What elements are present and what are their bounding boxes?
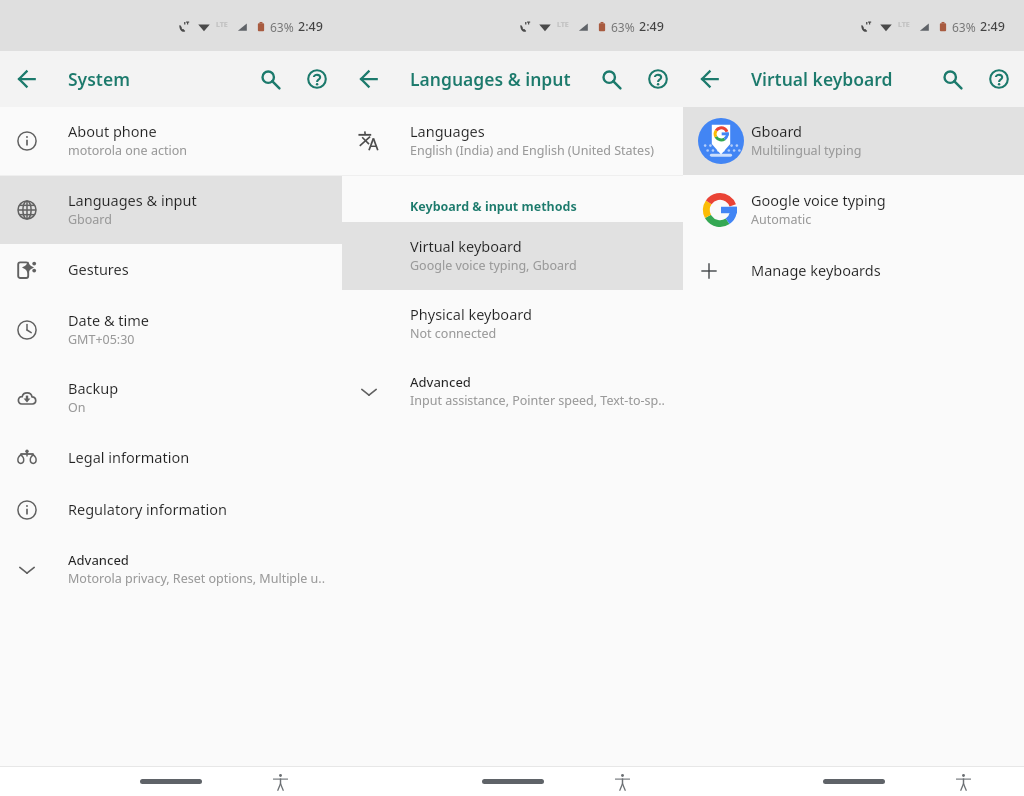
staticText: Advanced: [410, 373, 471, 391]
button[interactable]: Advanced: [0, 536, 342, 604]
button[interactable]: Home: [130, 767, 212, 796]
staticText: 63%: [270, 19, 294, 35]
button[interactable]: Home: [472, 767, 554, 796]
button[interactable]: Manage keyboards: [683, 245, 1024, 297]
staticText: Google voice typing, Gboard: [410, 257, 577, 274]
staticText: Legal information: [68, 447, 190, 467]
staticText: GMT+05:30: [68, 331, 135, 348]
staticText: LTE: [898, 20, 910, 30]
staticText: Automatic: [751, 211, 812, 228]
staticText: Motorola privacy, Reset options, Multipl…: [68, 570, 326, 587]
button[interactable]: Legal information: [0, 432, 342, 484]
staticText: Not connected: [410, 325, 497, 342]
button[interactable]: Help: [640, 61, 676, 97]
button[interactable]: Advanced: [342, 358, 683, 426]
button[interactable]: Backup: [0, 364, 342, 432]
staticText: 63%: [611, 19, 635, 35]
staticText: Regulatory information: [68, 499, 227, 519]
staticText: Languages & input: [68, 190, 197, 210]
button[interactable]: Accessibility: [949, 768, 977, 796]
button[interactable]: Accessibility: [608, 768, 636, 796]
staticText: Languages: [410, 121, 485, 141]
staticText: Input assistance, Pointer speed, Text-to…: [410, 392, 665, 409]
staticText: About phone: [68, 121, 157, 141]
staticText: 2:49: [639, 18, 664, 35]
button[interactable]: Google voice typing: [683, 175, 1024, 245]
staticText: On: [68, 399, 86, 416]
button[interactable]: Virtual keyboard: [342, 222, 683, 290]
staticText: Manage keyboards: [751, 260, 881, 280]
staticText: Virtual keyboard: [410, 236, 522, 256]
button[interactable]: Languages & input: [0, 176, 342, 244]
staticText: LTE: [216, 20, 228, 30]
staticText: Gestures: [68, 259, 129, 279]
button[interactable]: Search: [934, 61, 970, 97]
button[interactable]: Physical keyboard: [342, 290, 683, 358]
staticText: Virtual keyboard: [751, 67, 893, 91]
button[interactable]: Back: [692, 61, 728, 97]
button[interactable]: Search: [252, 61, 288, 97]
button[interactable]: About phone: [0, 107, 342, 175]
staticText: Advanced: [68, 551, 129, 569]
button[interactable]: Help: [299, 61, 335, 97]
button[interactable]: Languages: [342, 107, 683, 175]
staticText: Gboard: [68, 211, 112, 228]
button[interactable]: Gboard: [683, 107, 1024, 175]
staticText: Keyboard & input methods: [410, 198, 577, 215]
button[interactable]: Help: [981, 61, 1017, 97]
staticText: Multilingual typing: [751, 142, 862, 159]
button[interactable]: Accessibility: [266, 768, 294, 796]
staticText: Date & time: [68, 310, 149, 330]
button[interactable]: Date & time: [0, 296, 342, 364]
staticText: Languages & input: [410, 67, 571, 91]
button[interactable]: Home: [813, 767, 895, 796]
staticText: 2:49: [980, 18, 1005, 35]
staticText: motorola one action: [68, 142, 187, 159]
button[interactable]: Back: [9, 61, 45, 97]
button[interactable]: Search: [593, 61, 629, 97]
staticText: LTE: [557, 20, 569, 30]
staticText: Google voice typing: [751, 190, 886, 210]
staticText: System: [68, 67, 130, 91]
button[interactable]: Gestures: [0, 244, 342, 296]
staticText: Physical keyboard: [410, 304, 532, 324]
button[interactable]: Regulatory information: [0, 484, 342, 536]
staticText: Backup: [68, 378, 119, 398]
staticText: 2:49: [298, 18, 323, 35]
staticText: English (India) and English (United Stat…: [410, 142, 654, 159]
staticText: 63%: [952, 19, 976, 35]
button[interactable]: Back: [351, 61, 387, 97]
staticText: Gboard: [751, 121, 802, 141]
